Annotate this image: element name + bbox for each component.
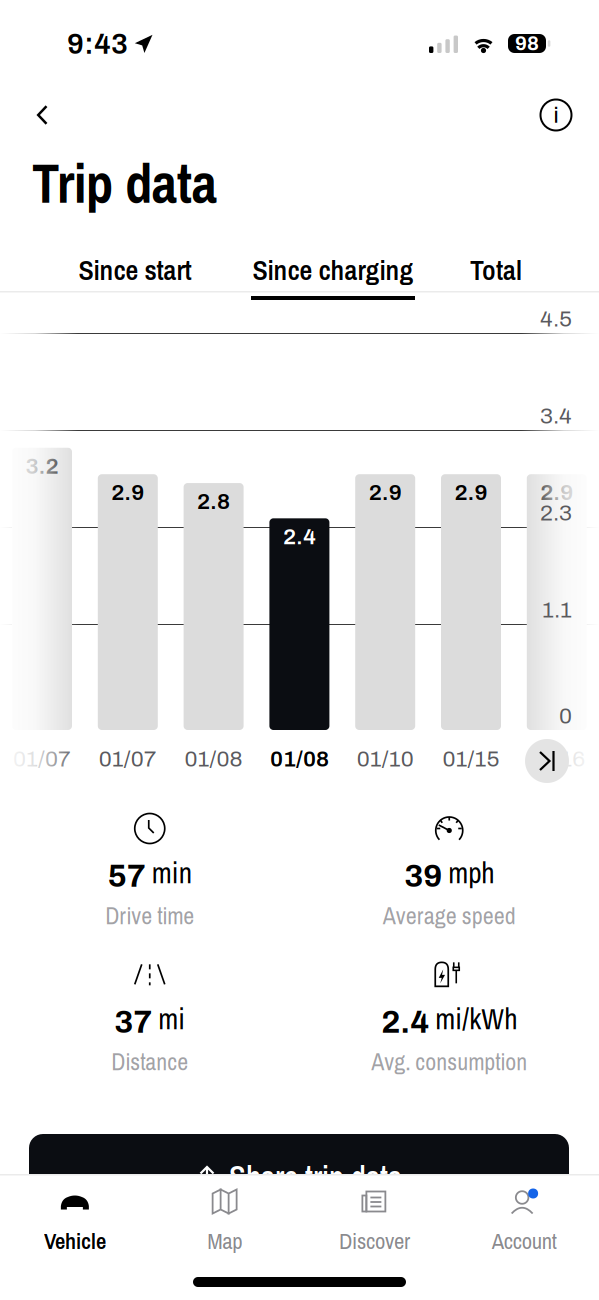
button[interactable]: Account	[449, 1175, 599, 1264]
button[interactable]: Total	[448, 247, 544, 293]
staticText: 98	[515, 33, 539, 54]
staticText: 2.4	[283, 524, 316, 549]
button[interactable]: Information	[530, 89, 582, 141]
staticText: Distance	[111, 1045, 188, 1078]
staticText: i	[553, 99, 558, 130]
staticText: 3.2	[25, 454, 58, 478]
button[interactable]: Back	[17, 89, 68, 141]
staticText: 01/15	[442, 747, 499, 771]
staticText: Trip data	[32, 146, 217, 220]
staticText: Since start	[78, 251, 191, 289]
staticText: 2.4	[381, 1004, 429, 1039]
staticText: Avg. consumption	[371, 1045, 527, 1078]
button[interactable]: Vehicle	[0, 1175, 150, 1264]
button[interactable]: Since start	[65, 247, 205, 293]
button[interactable]: Since charging	[243, 247, 423, 300]
button[interactable]: Share trip data	[29, 1134, 569, 1220]
staticText: 2.8	[197, 489, 230, 514]
staticText: 39	[404, 859, 442, 893]
staticText: 37	[114, 1004, 152, 1039]
staticText: mph	[448, 853, 494, 892]
staticText: 0	[559, 704, 572, 728]
staticText: 9:43	[67, 28, 128, 60]
staticText: Since charging	[252, 251, 413, 289]
staticText: 01/10	[357, 747, 414, 771]
staticText: 01/07	[99, 747, 157, 771]
staticText: Account	[492, 1225, 557, 1256]
staticText: Share trip data	[229, 1156, 402, 1198]
staticText: 2.9	[454, 480, 487, 505]
staticText: 1.1	[542, 598, 572, 622]
staticText: Discover	[339, 1225, 410, 1256]
button[interactable]: Discover	[299, 1175, 449, 1264]
staticText: 01/08	[270, 747, 329, 771]
staticText: min	[152, 853, 192, 892]
staticText: Average speed	[383, 899, 516, 932]
staticText: mi/kWh	[435, 999, 517, 1038]
button[interactable]: Next period	[525, 739, 569, 783]
staticText: 2.9	[540, 480, 573, 505]
staticText: Vehicle	[44, 1225, 106, 1256]
staticText: Drive time	[105, 899, 194, 932]
staticText: Map	[207, 1225, 242, 1256]
staticText: 01/08	[185, 747, 243, 771]
staticText: 01/16	[528, 747, 585, 771]
staticText: 57	[108, 859, 146, 893]
staticText: 2.9	[369, 480, 402, 505]
staticText: 3.4	[540, 404, 572, 428]
staticText: 01/07	[13, 747, 71, 771]
staticText: Total	[470, 251, 522, 289]
button[interactable]: Map	[150, 1175, 300, 1264]
staticText: 4.5	[540, 307, 572, 331]
staticText: 2.9	[111, 480, 144, 505]
staticText: 2.3	[540, 501, 572, 525]
staticText: mi	[158, 999, 185, 1038]
